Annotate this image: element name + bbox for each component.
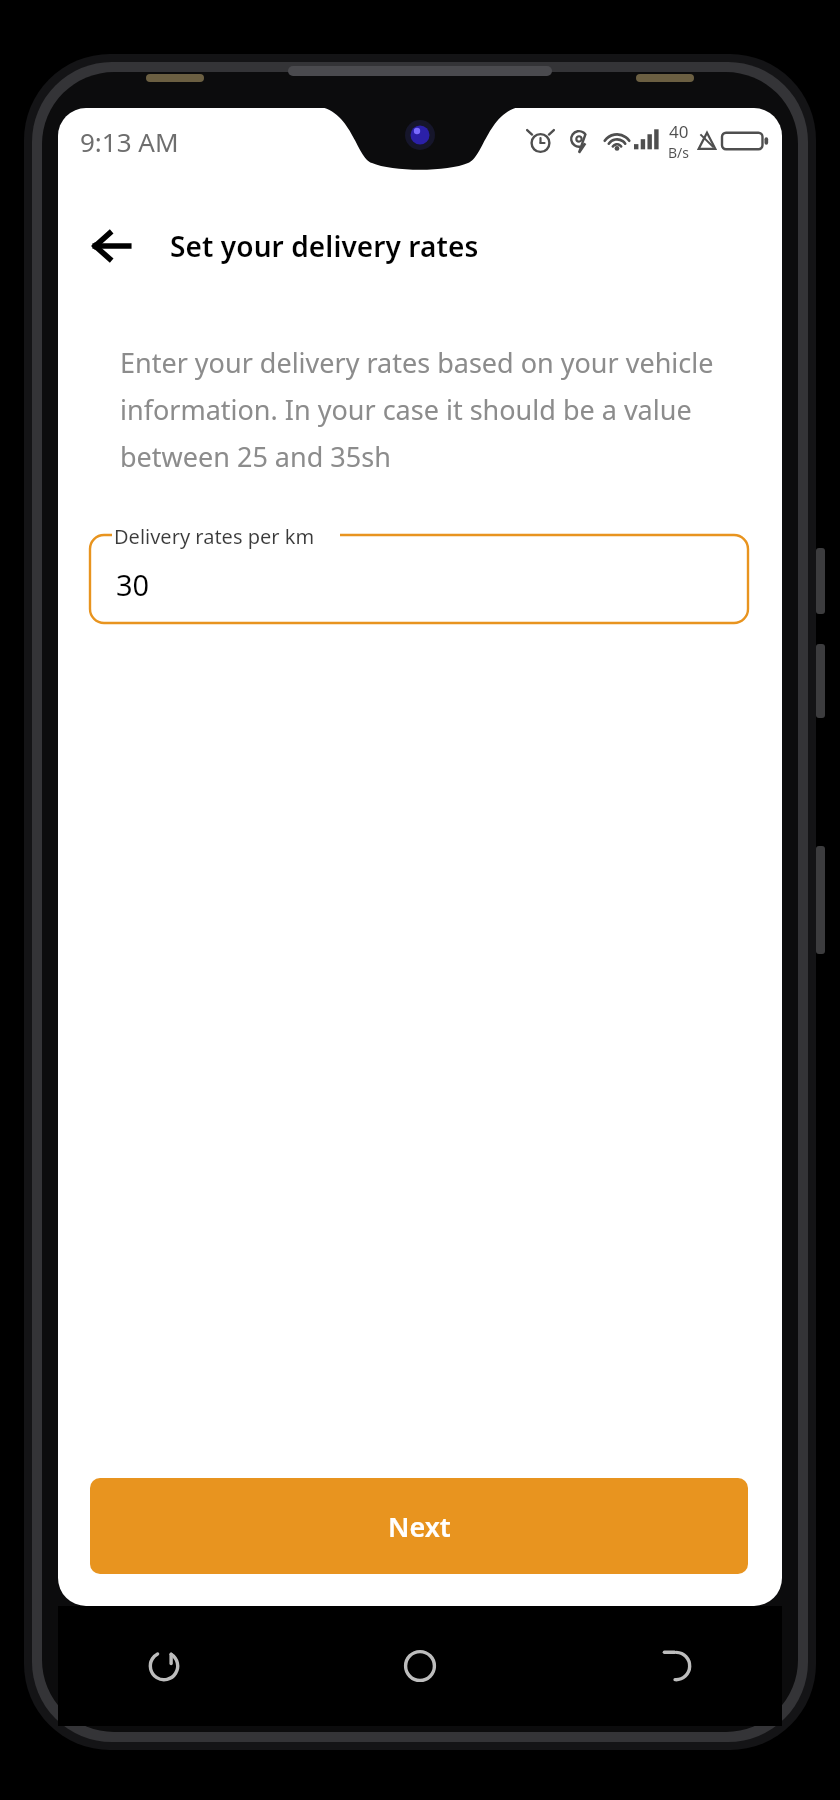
button[interactable]: Next [90,1478,748,1574]
button[interactable]: Back [628,1618,724,1714]
staticText: Enter your delivery rates based on your … [120,344,726,475]
button[interactable]: Back [76,210,148,282]
staticText: Delivery rates per km [114,523,315,550]
button[interactable]: Recent apps [116,1618,212,1714]
staticText: 9:13 AM [80,124,179,159]
button[interactable]: Home [372,1618,468,1714]
staticText: Next [388,1508,451,1545]
staticText: 30 [116,565,150,604]
staticText: 40 [669,120,689,143]
staticText: B/s [668,143,690,162]
staticText: Set your delivery rates [170,227,479,265]
